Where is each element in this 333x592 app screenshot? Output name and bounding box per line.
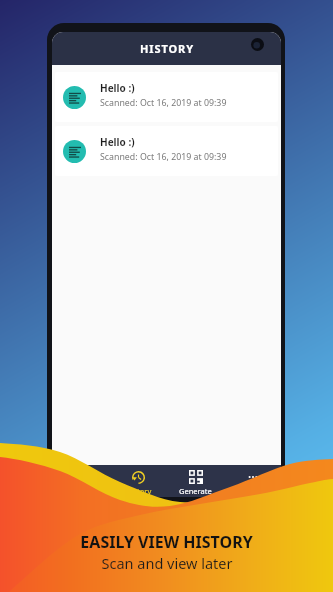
staticText: EASILY VIEW HISTORY	[80, 531, 253, 553]
staticText: Scanned: Oct 16, 2019 at 09:39	[100, 151, 227, 163]
staticText: Generate	[179, 486, 212, 496]
button[interactable]: Hello :)	[55, 72, 278, 122]
staticText: Hello :)	[100, 135, 135, 149]
button[interactable]: Hello :)	[55, 126, 278, 176]
button[interactable]: Scan	[52, 465, 110, 497]
button[interactable]: History	[110, 465, 167, 497]
staticText: History	[126, 486, 152, 496]
staticText: Hello :)	[100, 81, 135, 95]
staticText: Scanned: Oct 16, 2019 at 09:39	[100, 97, 227, 109]
button[interactable]: More	[224, 465, 281, 497]
staticText: Scan and view later	[101, 553, 233, 573]
button[interactable]: Generate	[167, 465, 224, 497]
staticText: HISTORY	[140, 41, 194, 56]
